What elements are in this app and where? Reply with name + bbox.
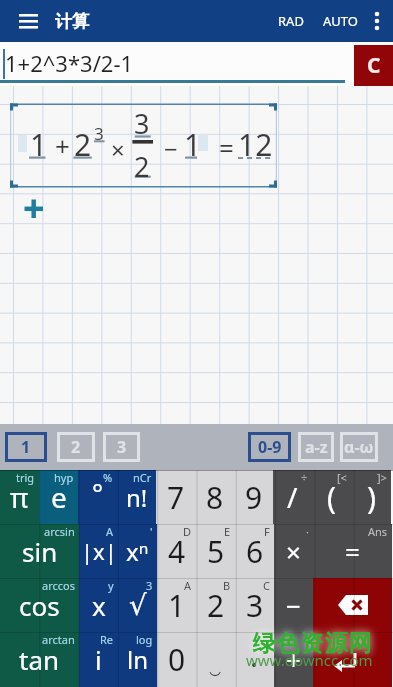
button[interactable]: C [354, 45, 393, 86]
staticText: , [267, 632, 270, 647]
staticText: − [164, 132, 178, 165]
button[interactable]: nCr [117, 470, 156, 524]
button[interactable]: C [235, 578, 274, 632]
staticText: trig [16, 470, 35, 485]
staticText: 3 [94, 122, 104, 145]
staticText: 1 [21, 436, 31, 458]
button[interactable]: ÷ [273, 470, 312, 524]
staticText: n! [126, 481, 148, 514]
staticText: · [306, 524, 309, 539]
staticText: i [95, 642, 102, 677]
staticText: tan [19, 642, 60, 677]
button[interactable]: α-ω [343, 435, 375, 459]
staticText: arcsin [44, 524, 75, 539]
button[interactable]: a-z [301, 435, 331, 459]
button[interactable]: − [274, 578, 313, 632]
staticText: A [184, 578, 192, 593]
staticText: 0-9 [258, 436, 282, 458]
staticText: E [224, 524, 231, 539]
button[interactable]: 8 [195, 470, 234, 524]
button[interactable]: 3 [118, 578, 157, 632]
button[interactable] [313, 578, 392, 632]
button[interactable]: · [274, 524, 313, 578]
button[interactable] [19, 12, 41, 30]
button[interactable]: RAD [278, 12, 304, 30]
staticText: www.downcc.com [246, 650, 373, 670]
staticText: ' [150, 524, 153, 539]
staticText: |x| [81, 536, 117, 566]
staticText: . [250, 635, 259, 676]
button[interactable]: 0 [157, 632, 196, 687]
button[interactable]: hyp [39, 470, 78, 524]
staticText: 0 [168, 639, 186, 680]
staticText: Ans [368, 524, 388, 539]
staticText: 1+2^3*3/2-1 [5, 48, 134, 78]
button[interactable]: 1+2^3*3/2-1 [0, 42, 354, 86]
staticText: 绿色资源网 [252, 629, 372, 658]
staticText: ‿ [209, 650, 222, 677]
button[interactable]: arctan [0, 632, 79, 687]
staticText: log [136, 632, 153, 647]
staticText: × [111, 133, 125, 166]
button[interactable]: , [235, 632, 274, 687]
button[interactable]: 0-9 [251, 435, 288, 459]
staticText: 2 [74, 124, 92, 165]
staticText: = [345, 534, 360, 569]
staticText: A [106, 524, 114, 539]
button[interactable]: % [78, 470, 117, 524]
staticText: cos [19, 588, 60, 623]
button[interactable]: A [157, 578, 196, 632]
button[interactable]: ' [118, 524, 157, 578]
staticText: ) [367, 477, 376, 518]
button[interactable]: log [118, 632, 157, 687]
button[interactable]: D [157, 524, 196, 578]
staticText: 1 [184, 124, 202, 165]
staticText: 2 [207, 585, 225, 626]
staticText: sin [22, 534, 58, 569]
staticText: 3 [117, 436, 127, 458]
button[interactable]: trig [0, 470, 39, 524]
staticText: 12 [238, 124, 273, 165]
button[interactable]: Ans [313, 524, 392, 578]
button[interactable]: A [79, 524, 118, 578]
staticText: ]> [377, 470, 387, 485]
staticText: 1 [30, 124, 48, 165]
staticText: arccos [42, 578, 75, 593]
staticText: 2 [71, 436, 81, 458]
button[interactable]: [< [312, 470, 351, 524]
staticText: 2 [134, 148, 150, 185]
button[interactable]: ]> [351, 470, 391, 524]
staticText: F [264, 524, 270, 539]
button[interactable]: F [235, 524, 274, 578]
button[interactable]: ‿ [196, 632, 235, 687]
staticText: arctan [42, 632, 75, 647]
button[interactable]: y [79, 578, 118, 632]
staticText: AUTO [323, 12, 358, 30]
staticText: B [223, 578, 231, 593]
button[interactable]: E [196, 524, 235, 578]
button[interactable]: arccos [0, 578, 79, 632]
staticText: / [287, 478, 298, 516]
button[interactable]: 9 [234, 470, 273, 524]
staticText: Re [100, 632, 114, 647]
staticText: √ [129, 589, 147, 622]
button[interactable]: AUTO [323, 12, 358, 30]
staticText: × [286, 534, 301, 569]
button[interactable]: 1 [8, 435, 44, 459]
staticText: = [219, 130, 234, 165]
button[interactable]: 2 [60, 435, 92, 459]
button[interactable]: Re [79, 632, 118, 687]
button[interactable] [366, 4, 388, 38]
button[interactable]: arcsin [0, 524, 79, 578]
button[interactable] [313, 632, 392, 687]
staticText: 4 [168, 531, 186, 572]
button[interactable] [19, 194, 48, 223]
button[interactable]: 7 [156, 470, 195, 524]
staticText: RAD [278, 12, 304, 30]
staticText: 7 [167, 477, 185, 518]
staticText: ln [127, 643, 149, 676]
button[interactable]: 3 [106, 435, 137, 459]
button[interactable]: + [274, 632, 313, 687]
button[interactable]: B [196, 578, 235, 632]
staticText: 3 [134, 105, 150, 142]
